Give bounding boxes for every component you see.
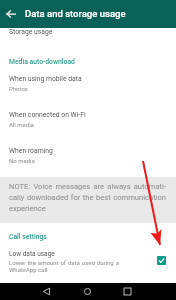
staticText: All media (9, 121, 34, 128)
button[interactable]: Navigate up (5, 8, 17, 20)
staticText: Low data usage (9, 250, 55, 258)
button[interactable]: When roaming (0, 144, 176, 176)
button[interactable]: Home (84, 288, 91, 295)
button[interactable]: Low data usage (0, 246, 176, 279)
staticText: Media auto-download (9, 58, 75, 66)
staticText: When using mobile data (9, 75, 82, 83)
button[interactable]: When connected on Wi-Fi (0, 108, 176, 140)
button[interactable]: Back (43, 288, 50, 295)
staticText: Data and storage usage (25, 8, 126, 19)
staticText: NOTE: Voice messages are always automati… (9, 182, 166, 213)
button[interactable]: Storage usage (0, 28, 176, 40)
staticText: When connected on Wi-Fi (9, 111, 86, 119)
button[interactable]: Recent apps (124, 288, 131, 295)
staticText: Call settings (9, 233, 47, 241)
staticText: Storage usage (9, 28, 53, 36)
button[interactable]: When using mobile data (0, 72, 176, 104)
staticText: Lower the amount of data used during a W… (9, 259, 119, 273)
staticText: Photos (9, 85, 28, 92)
button[interactable]: Low data usage toggle (155, 254, 167, 266)
staticText: When roaming (9, 147, 53, 155)
staticText: No media (9, 157, 35, 164)
